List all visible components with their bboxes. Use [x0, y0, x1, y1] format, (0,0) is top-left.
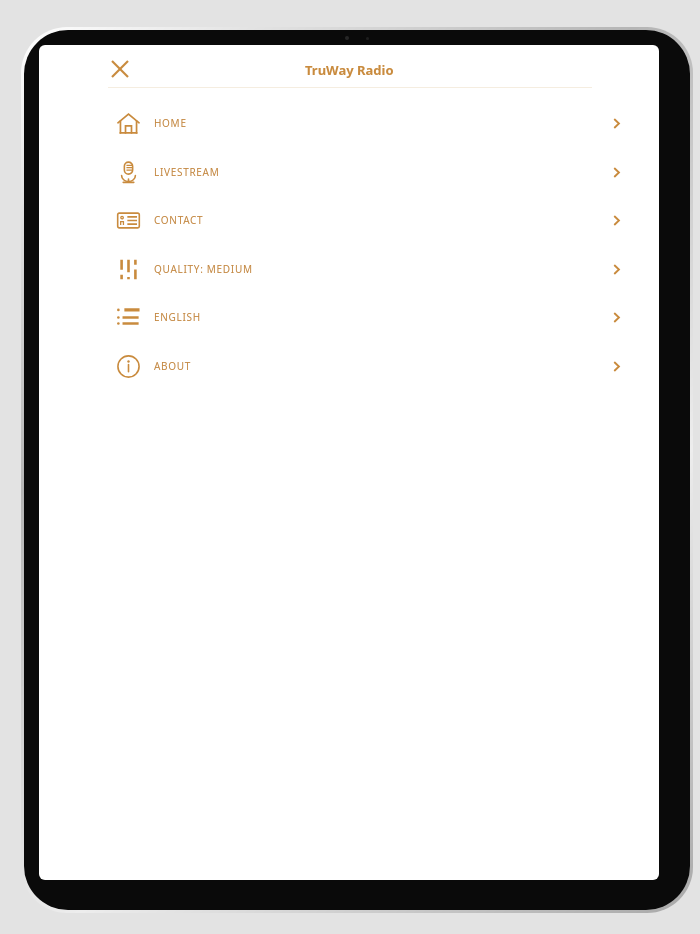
- button[interactable]: Close: [102, 51, 138, 87]
- button[interactable]: HOME: [39, 100, 659, 146]
- staticText: ENGLISH: [154, 310, 201, 324]
- button[interactable]: ABOUT: [39, 343, 659, 389]
- button[interactable]: LIVESTREAM: [39, 149, 659, 195]
- staticText: QUALITY: MEDIUM: [154, 262, 253, 276]
- staticText: HOME: [154, 116, 187, 130]
- button[interactable]: QUALITY: MEDIUM: [39, 246, 659, 292]
- button[interactable]: CONTACT: [39, 197, 659, 243]
- staticText: LIVESTREAM: [154, 165, 220, 179]
- staticText: ABOUT: [154, 359, 192, 373]
- button[interactable]: ENGLISH: [39, 294, 659, 340]
- staticText: TruWay Radio: [305, 61, 394, 79]
- staticText: CONTACT: [154, 213, 204, 227]
